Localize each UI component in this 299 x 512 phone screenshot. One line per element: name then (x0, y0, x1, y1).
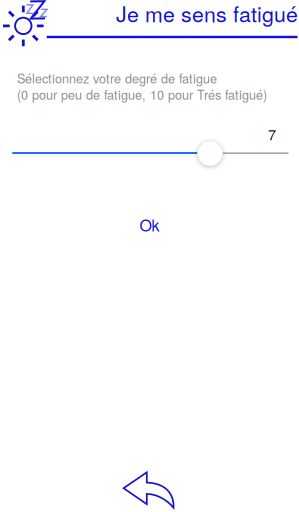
button[interactable]: Back (0, 0, 299, 512)
button[interactable]: Fatigue level (197, 141, 222, 166)
staticText: Sélectionnez votre degré de fatigue (17, 69, 217, 87)
staticText: Je me sens fatigué (116, 0, 298, 28)
staticText: (0 pour peu de fatigue, 10 pour Trés fat… (17, 85, 267, 103)
staticText: 7 (268, 123, 276, 144)
staticText: Ok (139, 213, 159, 236)
button[interactable]: Ok (0, 212, 299, 236)
